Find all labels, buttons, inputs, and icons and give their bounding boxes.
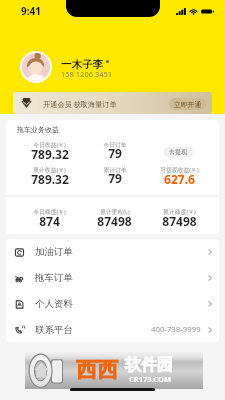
staticText: 去提现 <box>169 148 187 156</box>
staticText: 软件园 <box>125 355 173 375</box>
button[interactable]: 拖车订单 <box>6 265 219 291</box>
staticText: 立即开通 <box>174 100 202 109</box>
button[interactable]: 立即开通 <box>169 98 206 110</box>
staticText: 联系平台 <box>35 324 73 336</box>
staticText: 79 <box>108 170 122 186</box>
staticText: 87498 <box>97 213 132 229</box>
staticText: 今日订单 <box>103 141 127 148</box>
staticText: CR173.COM <box>129 374 172 384</box>
staticText: 627.6 <box>164 171 195 187</box>
staticText: 累计里程(L) <box>100 208 130 216</box>
staticText: 158 1206 3451 <box>61 69 113 79</box>
staticText: 874 <box>39 213 60 229</box>
staticText: 87498 <box>162 213 197 229</box>
staticText: 今日收益(￥) <box>33 141 66 149</box>
staticText: 累计收益(￥) <box>33 166 66 174</box>
staticText: 加油订单 <box>35 246 73 258</box>
staticText: 一木子李 <box>61 58 103 71</box>
button[interactable]: 开通会员 获取海量订单 <box>13 92 212 114</box>
staticText: 拖车业务收益 <box>17 125 59 134</box>
staticText: 开通会员 获取海量订单 <box>43 99 117 109</box>
staticText: 今日额度(￥) <box>33 208 66 216</box>
staticText: 累计订单 <box>103 166 127 173</box>
button[interactable]: 去提现 <box>163 147 193 157</box>
button[interactable]: 个人资料 <box>6 291 219 317</box>
button[interactable]: 联系平台 <box>6 317 219 342</box>
staticText: 9:41 <box>21 4 41 18</box>
button[interactable]: 加油订单 <box>6 239 219 265</box>
staticText: 789.32 <box>31 146 69 162</box>
staticText: 个人资料 <box>35 298 73 310</box>
staticText: 拖车订单 <box>35 272 73 284</box>
staticText: 可提现收益(￥) <box>160 166 199 174</box>
staticText: 79 <box>108 145 122 161</box>
staticText: 西西 <box>76 357 118 383</box>
staticText: 400-738-9999 <box>151 324 201 335</box>
staticText: 累计额度(￥) <box>163 208 196 216</box>
staticText: 789.32 <box>31 171 69 187</box>
